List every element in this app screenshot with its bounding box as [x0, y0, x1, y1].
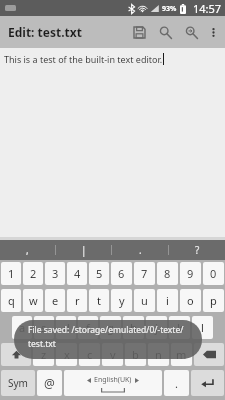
- button[interactable]: Enter: [191, 370, 224, 396]
- button[interactable]: g: [100, 316, 121, 339]
- button[interactable]: 9: [180, 262, 201, 285]
- button[interactable]: r: [67, 289, 87, 312]
- staticText: i: [166, 293, 169, 308]
- staticText: x: [64, 347, 70, 362]
- staticText: .: [175, 376, 178, 391]
- staticText: 4: [74, 266, 81, 281]
- staticText: n: [155, 347, 162, 362]
- staticText: 0: [210, 266, 217, 281]
- staticText: 5: [96, 266, 103, 281]
- staticText: v: [110, 347, 116, 362]
- staticText: f: [86, 320, 90, 335]
- staticText: j: [155, 320, 158, 335]
- staticText: o: [187, 293, 194, 308]
- staticText: z: [41, 347, 47, 362]
- staticText: This is a test of the built-in text edit…: [4, 53, 163, 65]
- button[interactable]: Space, English UK: [64, 370, 162, 396]
- staticText: 8: [164, 266, 171, 281]
- button[interactable]: e: [45, 289, 65, 312]
- button[interactable]: s: [34, 316, 54, 339]
- button[interactable]: 4: [67, 262, 87, 285]
- staticText: 9: [187, 266, 194, 281]
- staticText: s: [41, 320, 47, 335]
- button[interactable]: i: [157, 289, 178, 312]
- button[interactable]: Shift: [1, 343, 31, 366]
- button[interactable]: o: [180, 289, 201, 312]
- button[interactable]: ,: [0, 240, 55, 260]
- button[interactable]: 0: [203, 262, 224, 285]
- button[interactable]: q: [1, 289, 21, 312]
- button[interactable]: d: [56, 316, 76, 339]
- button[interactable]: k: [169, 316, 190, 339]
- staticText: Edit: test.txt: [8, 24, 82, 40]
- staticText: l: [201, 320, 204, 335]
- staticText: 1: [8, 266, 15, 281]
- button[interactable]: z: [33, 343, 54, 366]
- staticText: @: [44, 375, 55, 391]
- staticText: ?: [195, 243, 200, 257]
- button[interactable]: ?: [169, 240, 225, 260]
- button[interactable]: m: [171, 343, 192, 366]
- staticText: k: [177, 320, 183, 335]
- button[interactable]: l: [192, 316, 213, 339]
- button[interactable]: Sym: [1, 370, 35, 396]
- button[interactable]: y: [111, 289, 132, 312]
- button[interactable]: .: [164, 370, 189, 396]
- button[interactable]: 5: [89, 262, 109, 285]
- staticText: 6: [118, 266, 125, 281]
- staticText: 3: [52, 266, 59, 281]
- button[interactable]: f: [78, 316, 98, 339]
- button[interactable]: a: [12, 316, 32, 339]
- staticText: y: [119, 293, 125, 308]
- staticText: t: [97, 293, 101, 308]
- button[interactable]: More options: [204, 16, 222, 48]
- staticText: File saved: /storage/emulated/0/-texte/t…: [28, 324, 190, 349]
- button[interactable]: 1: [1, 262, 21, 285]
- button[interactable]: v: [102, 343, 123, 366]
- staticText: r: [75, 293, 80, 308]
- button[interactable]: Backspace: [194, 343, 224, 366]
- button[interactable]: b: [125, 343, 146, 366]
- staticText: English(UK): [94, 375, 132, 385]
- button[interactable]: 7: [134, 262, 155, 285]
- staticText: 93%: [162, 4, 177, 14]
- button[interactable]: Save: [126, 16, 152, 48]
- button[interactable]: |: [56, 240, 111, 260]
- staticText: Sym: [8, 376, 28, 390]
- staticText: 14:57: [193, 1, 222, 16]
- staticText: ,: [26, 243, 29, 257]
- staticText: m: [176, 347, 187, 362]
- staticText: .: [139, 243, 142, 257]
- button[interactable]: n: [148, 343, 169, 366]
- button[interactable]: u: [134, 289, 155, 312]
- button[interactable]: 3: [45, 262, 65, 285]
- staticText: a: [19, 320, 26, 335]
- staticText: u: [141, 293, 148, 308]
- staticText: g: [107, 320, 114, 335]
- staticText: 7: [141, 266, 148, 281]
- button[interactable]: 8: [157, 262, 178, 285]
- staticText: q: [8, 293, 15, 308]
- staticText: c: [87, 347, 93, 362]
- staticText: 2: [30, 266, 37, 281]
- button[interactable]: 6: [111, 262, 132, 285]
- staticText: |: [81, 243, 87, 257]
- button[interactable]: h: [123, 316, 144, 339]
- button[interactable]: c: [79, 343, 100, 366]
- button[interactable]: x: [56, 343, 77, 366]
- staticText: p: [210, 293, 217, 308]
- button[interactable]: w: [23, 289, 43, 312]
- button[interactable]: 2: [23, 262, 43, 285]
- button[interactable]: Find next: [178, 16, 204, 48]
- staticText: d: [63, 320, 70, 335]
- button[interactable]: Search: [152, 16, 178, 48]
- staticText: b: [132, 347, 139, 362]
- staticText: e: [52, 293, 59, 308]
- staticText: h: [130, 320, 137, 335]
- button[interactable]: p: [203, 289, 224, 312]
- button[interactable]: j: [146, 316, 167, 339]
- staticText: w: [29, 293, 38, 308]
- button[interactable]: .: [112, 240, 168, 260]
- button[interactable]: At sign: [37, 370, 62, 396]
- button[interactable]: t: [89, 289, 109, 312]
